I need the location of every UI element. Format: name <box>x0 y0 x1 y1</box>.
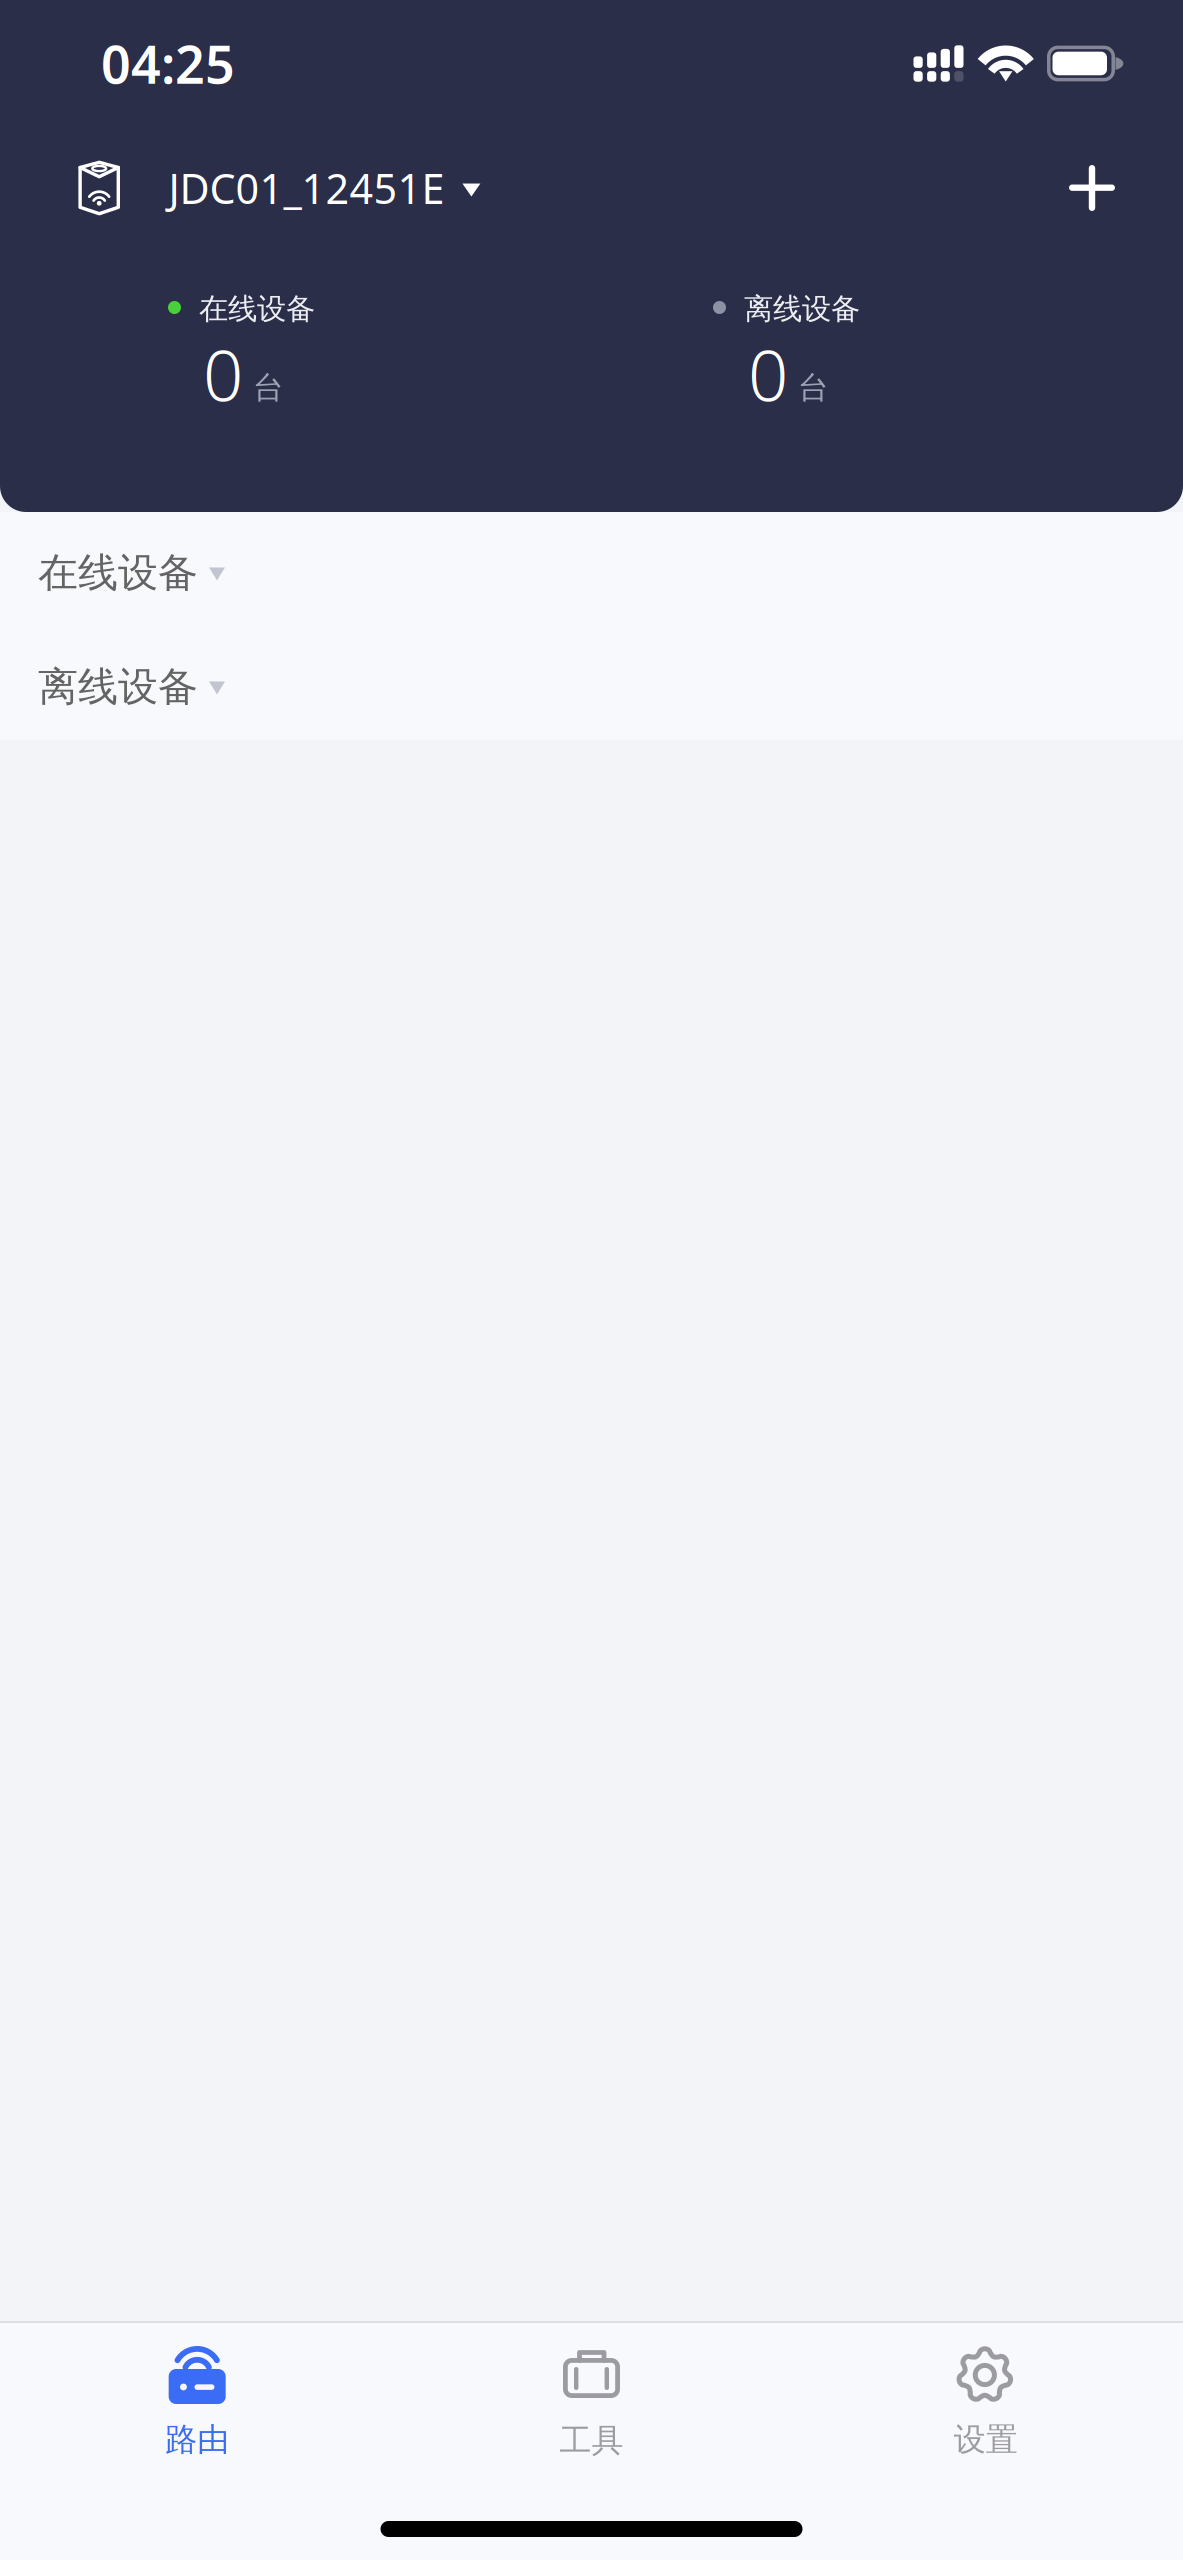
button[interactable]: 路由 <box>0 2323 394 2471</box>
staticText: 在线设备 <box>199 291 315 327</box>
button[interactable]: 设置 <box>789 2323 1183 2471</box>
staticText: 0 <box>203 327 243 421</box>
staticText: 离线设备 <box>38 662 198 711</box>
button[interactable]: Add device <box>1042 138 1142 238</box>
staticText: 工具 <box>559 2421 623 2460</box>
button[interactable]: 工具 <box>394 2323 789 2471</box>
staticText: 离线设备 <box>744 291 860 327</box>
staticText: 路由 <box>165 2420 229 2459</box>
staticText: 0 <box>748 327 788 421</box>
staticText: 04:25 <box>101 29 235 98</box>
staticText: 台 <box>253 369 284 407</box>
button[interactable]: 离线设备 <box>0 626 1183 740</box>
staticText: 在线设备 <box>38 548 198 597</box>
button[interactable]: JDC01_12451E <box>0 138 504 238</box>
staticText: 设置 <box>954 2420 1018 2459</box>
button[interactable]: 在线设备 <box>0 512 1183 626</box>
staticText: JDC01_12451E <box>168 161 444 215</box>
staticText: 台 <box>798 369 829 407</box>
